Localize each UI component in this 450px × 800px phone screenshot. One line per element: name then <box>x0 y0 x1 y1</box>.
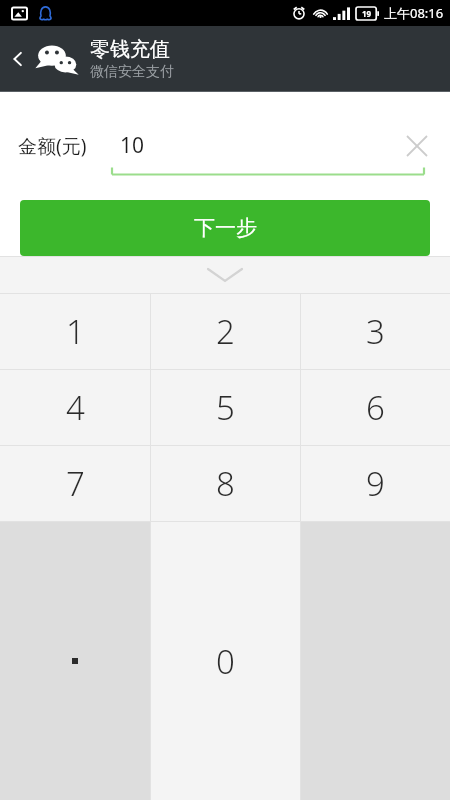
button[interactable] <box>0 522 150 800</box>
button[interactable]: 0 <box>151 522 300 800</box>
staticText: 10 <box>120 131 145 160</box>
staticText: 上午08:16 <box>384 4 444 22</box>
staticText: 1 <box>66 309 85 354</box>
button[interactable]: 下一步 <box>20 200 430 256</box>
staticText: 2 <box>216 309 235 354</box>
button[interactable]: 5 <box>151 370 300 445</box>
staticText: 3 <box>366 309 385 354</box>
button[interactable]: 2 <box>151 294 300 369</box>
button[interactable]: 3 <box>301 294 450 369</box>
staticText: 8 <box>216 461 235 506</box>
button[interactable]: 4 <box>0 370 150 445</box>
staticText: 5 <box>216 385 235 430</box>
button[interactable]: 6 <box>301 370 450 445</box>
staticText: 零钱充值 <box>90 37 170 62</box>
staticText: 19 <box>362 8 372 19</box>
staticText: 微信安全支付 <box>90 63 174 81</box>
button[interactable]: 8 <box>151 446 300 521</box>
button[interactable]: Hide keyboard <box>0 256 450 294</box>
button[interactable]: 1 <box>0 294 150 369</box>
button[interactable]: 7 <box>0 446 150 521</box>
staticText: 7 <box>66 461 85 506</box>
staticText: 4 <box>66 385 85 430</box>
staticText: 9 <box>366 461 385 506</box>
button[interactable]: 9 <box>301 446 450 521</box>
staticText: 下一步 <box>194 215 257 241</box>
staticText: 0 <box>216 639 235 684</box>
staticText: 金额(元) <box>18 133 87 159</box>
staticText: 6 <box>366 385 385 430</box>
button[interactable]: Back <box>0 26 36 92</box>
button[interactable]: Clear <box>402 131 432 161</box>
